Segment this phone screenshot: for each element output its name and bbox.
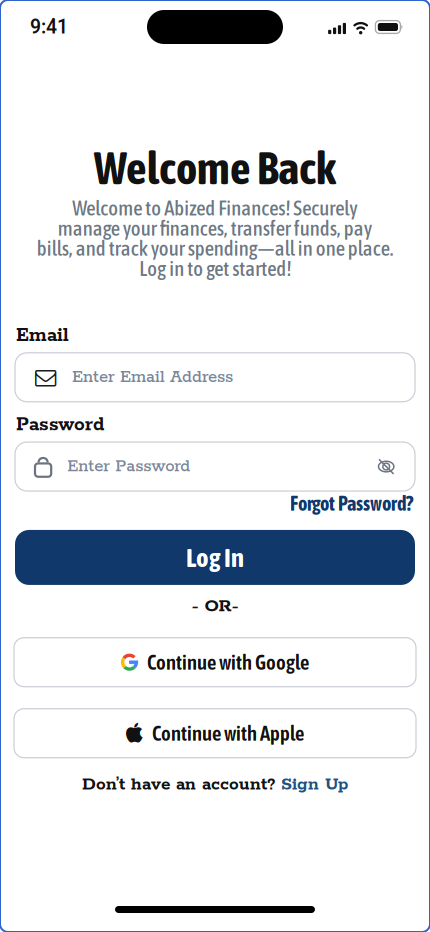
staticText: Sign Up bbox=[281, 774, 348, 796]
button[interactable]: Sign Up bbox=[281, 774, 348, 796]
staticText: - OR- bbox=[191, 595, 238, 618]
button[interactable]: Show Password bbox=[369, 450, 415, 482]
staticText: Password bbox=[16, 413, 104, 437]
staticText: Welcome to Abized Finances! Securely man… bbox=[36, 198, 393, 278]
staticText: Don’t have an account? bbox=[82, 774, 276, 796]
staticText: Enter Email Address bbox=[72, 367, 233, 388]
staticText: Log In bbox=[186, 542, 244, 573]
staticText: Continue with Apple bbox=[152, 721, 304, 745]
button[interactable]: Enter Password bbox=[15, 442, 415, 491]
staticText: Enter Password bbox=[67, 456, 190, 477]
staticText: 9:41 bbox=[30, 16, 68, 38]
staticText: Continue with Google bbox=[147, 650, 309, 674]
button[interactable]:  bbox=[15, 353, 415, 402]
button[interactable]: Continue with Google bbox=[14, 638, 416, 687]
staticText: Email bbox=[16, 323, 69, 348]
button[interactable]:  bbox=[14, 709, 416, 758]
staticText: Forgot Password? bbox=[290, 492, 413, 515]
staticText:  bbox=[126, 722, 143, 744]
staticText:  bbox=[35, 367, 56, 388]
button[interactable]: Forgot Password? bbox=[290, 492, 413, 515]
button[interactable]: Log In bbox=[15, 530, 415, 585]
staticText: Welcome Back bbox=[94, 142, 336, 194]
